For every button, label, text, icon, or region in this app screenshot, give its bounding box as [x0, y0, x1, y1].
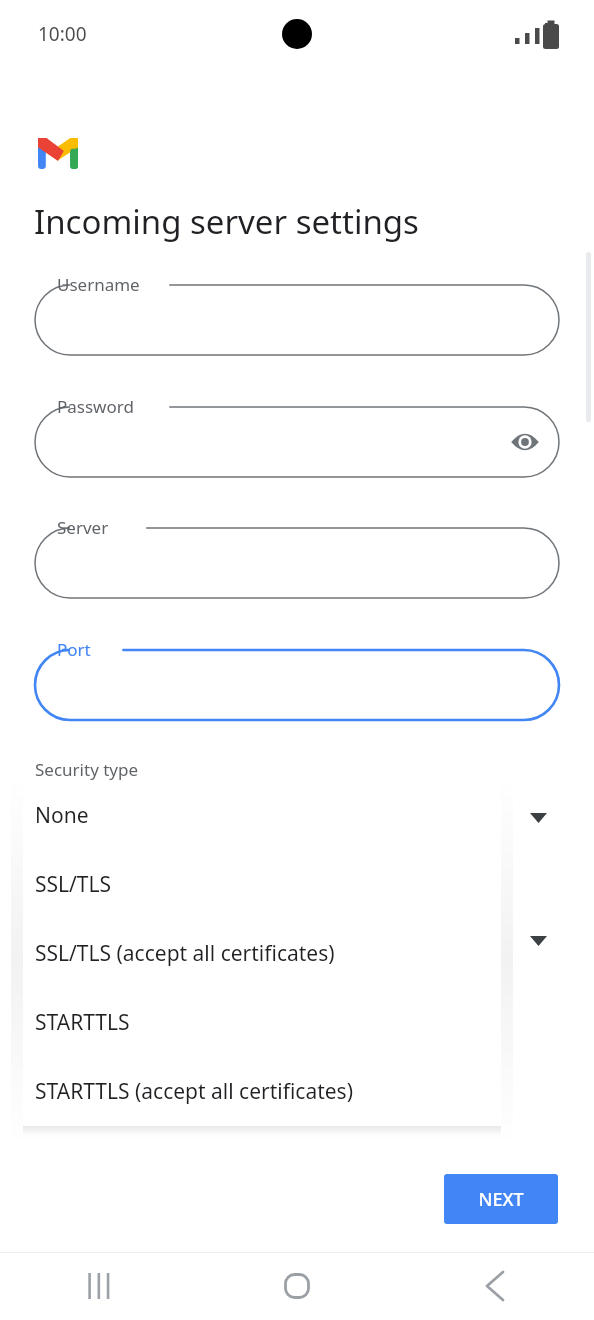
button[interactable]: Recent apps	[0, 1252, 198, 1320]
staticText: NEXT	[478, 1187, 524, 1212]
button[interactable]: Open dropdown	[520, 923, 556, 959]
staticText: Server	[57, 516, 109, 539]
button[interactable]: SSL/TLS (accept all certificates)	[23, 919, 501, 988]
button[interactable]: Port	[35, 650, 559, 720]
button[interactable]: Open dropdown	[520, 800, 556, 836]
staticText: Port	[57, 638, 91, 661]
staticText: SSL/TLS (accept all certificates)	[35, 939, 335, 968]
button[interactable]: Show password	[503, 420, 547, 464]
staticText: Password	[57, 395, 134, 418]
button[interactable]: Username	[35, 285, 559, 355]
button[interactable]: NEXT	[444, 1174, 558, 1224]
staticText: Security type	[35, 758, 139, 781]
button[interactable]: SSL/TLS	[23, 850, 501, 919]
staticText: None	[35, 801, 89, 830]
staticText: STARTTLS (accept all certificates)	[35, 1077, 353, 1106]
staticText: Username	[57, 273, 140, 296]
staticText: STARTTLS	[35, 1008, 130, 1037]
staticText: 10:00	[38, 21, 87, 47]
staticText: SSL/TLS	[35, 870, 112, 899]
button[interactable]: STARTTLS (accept all certificates)	[23, 1057, 501, 1126]
button[interactable]: Password	[35, 407, 559, 477]
button[interactable]: Server	[35, 528, 559, 598]
button[interactable]: Back	[396, 1252, 594, 1320]
button[interactable]: STARTTLS	[23, 988, 501, 1057]
button[interactable]: None	[23, 781, 501, 850]
button[interactable]: Home	[198, 1252, 396, 1320]
staticText: Incoming server settings	[34, 199, 419, 244]
